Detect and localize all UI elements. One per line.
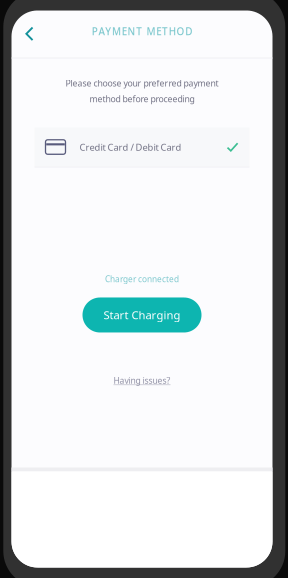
staticText: Start Charging: [103, 308, 180, 322]
staticText: Charger connected: [105, 273, 179, 284]
staticText: Having issues?: [113, 375, 170, 386]
staticText: Please choose your preferred payment: [65, 77, 218, 89]
staticText: method before proceeding: [89, 93, 194, 104]
button[interactable]: Start Charging: [82, 297, 201, 332]
staticText: Credit Card / Debit Card: [79, 141, 181, 153]
button[interactable]: Having issues?: [102, 370, 182, 390]
button[interactable]: Back: [11, 13, 47, 55]
staticText: PAYMENT METHOD: [92, 25, 192, 38]
button[interactable]: Credit Card / Debit Card: [34, 127, 249, 167]
